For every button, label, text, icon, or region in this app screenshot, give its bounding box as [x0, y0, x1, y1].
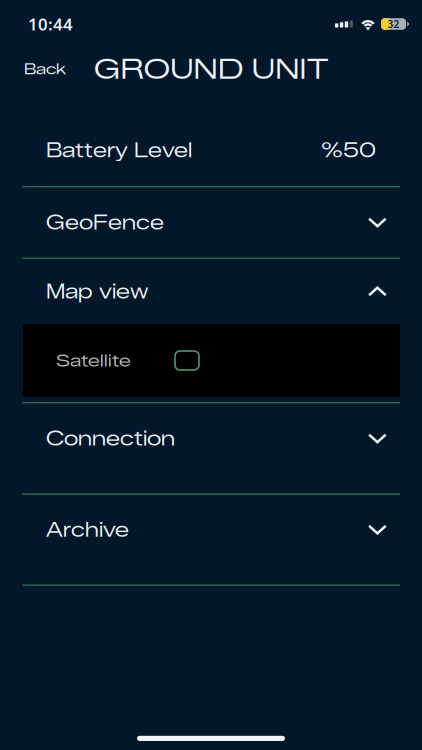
button[interactable]: Archive: [0, 495, 422, 564]
button[interactable]: Connection: [0, 403, 422, 473]
staticText: Archive: [46, 518, 129, 542]
staticText: Back: [24, 60, 66, 78]
staticText: Connection: [46, 426, 175, 450]
button[interactable]: Map view: [0, 259, 422, 324]
staticText: %50: [321, 138, 376, 162]
staticText: GROUND UNIT: [94, 52, 328, 86]
staticText: Battery Level: [46, 138, 192, 162]
staticText: Map view: [46, 279, 148, 303]
staticText: 10:44: [28, 13, 73, 35]
button[interactable]: GeoFence: [0, 187, 422, 257]
button[interactable]: Satellite: [23, 324, 400, 397]
button[interactable]: Battery Level: [0, 114, 422, 186]
button[interactable]: Back: [0, 48, 90, 90]
staticText: Satellite: [56, 350, 131, 371]
staticText: 32: [388, 17, 400, 31]
staticText: GeoFence: [46, 210, 164, 234]
